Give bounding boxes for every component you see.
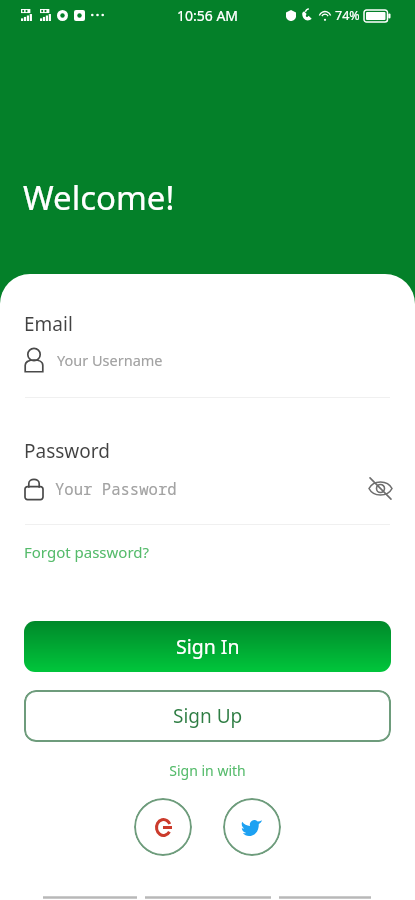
staticText: 10:56 AM <box>177 6 239 25</box>
staticText: Sign Up <box>173 703 243 729</box>
staticText: Sign In <box>176 633 240 660</box>
staticText: Your Password <box>55 478 177 499</box>
button[interactable]: Sign In <box>24 621 391 672</box>
staticText: Your Username <box>57 350 163 370</box>
button[interactable]: Sign in with Google <box>134 798 192 856</box>
button[interactable]: Show password <box>367 477 394 500</box>
staticText: 74% <box>335 7 360 24</box>
button[interactable]: Sign in with Twitter <box>223 798 281 856</box>
staticText: Welcome! <box>23 175 175 220</box>
staticText: Sign in with <box>0 761 415 780</box>
button[interactable]: Forgot password? <box>24 542 150 562</box>
staticText: Email <box>24 311 73 337</box>
staticText: Password <box>24 438 110 464</box>
staticText: Forgot password? <box>24 542 150 562</box>
button[interactable]: Sign Up <box>24 690 391 742</box>
